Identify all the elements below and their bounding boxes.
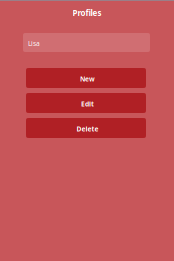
button[interactable]: Delete — [26, 118, 146, 138]
staticText: Lisa — [28, 39, 40, 48]
button[interactable]: Edit — [26, 93, 146, 113]
staticText: Edit — [81, 100, 94, 108]
staticText: Delete — [76, 125, 98, 133]
staticText: New — [80, 75, 95, 83]
staticText: Profiles — [72, 8, 101, 18]
button[interactable]: New — [26, 68, 146, 88]
